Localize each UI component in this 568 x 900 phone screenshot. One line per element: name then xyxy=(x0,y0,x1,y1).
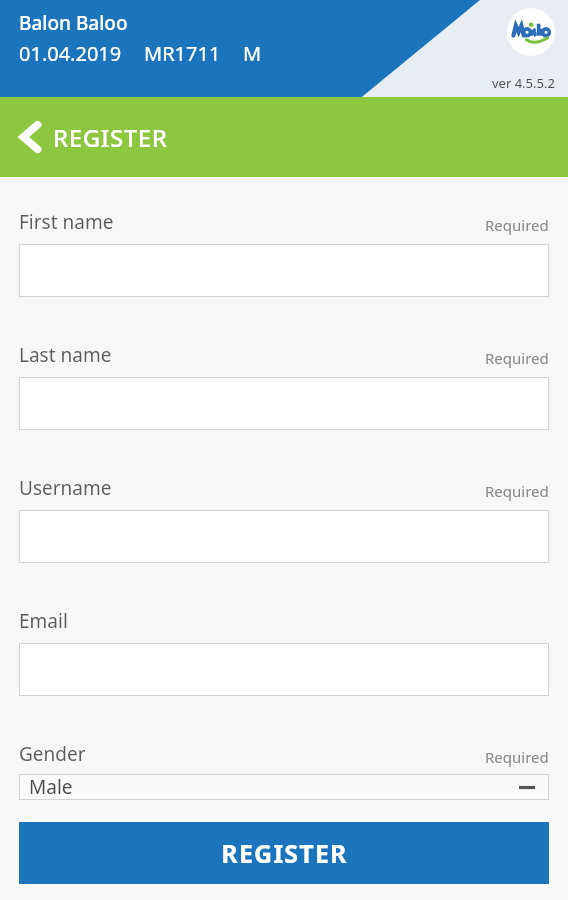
staticText: Email xyxy=(19,608,68,634)
staticText: Username xyxy=(19,475,112,501)
staticText: Gender xyxy=(19,741,86,767)
button[interactable]: REGISTER xyxy=(19,822,549,884)
staticText: Last name xyxy=(19,342,112,368)
staticText: Balon Baloo xyxy=(19,10,128,36)
staticText: First name xyxy=(19,209,114,235)
staticText: 01.04.2019 xyxy=(19,40,122,67)
staticText: REGISTER xyxy=(53,121,168,154)
staticText: Required xyxy=(485,747,549,767)
button[interactable]: Male xyxy=(19,774,549,800)
staticText: MR1711 xyxy=(144,40,221,67)
staticText: Required xyxy=(485,348,549,368)
staticText: M xyxy=(243,40,262,67)
button[interactable]: REGISTER xyxy=(0,97,568,177)
button[interactable] xyxy=(19,244,549,297)
staticText: Required xyxy=(485,215,549,235)
staticText: REGISTER xyxy=(221,836,348,870)
staticText: Male xyxy=(29,774,73,800)
staticText: Required xyxy=(485,481,549,501)
button[interactable] xyxy=(19,643,549,696)
button[interactable] xyxy=(19,510,549,563)
button[interactable] xyxy=(19,377,549,430)
button[interactable]: Maisha logo xyxy=(507,8,555,56)
staticText: ver 4.5.5.2 xyxy=(492,74,555,92)
